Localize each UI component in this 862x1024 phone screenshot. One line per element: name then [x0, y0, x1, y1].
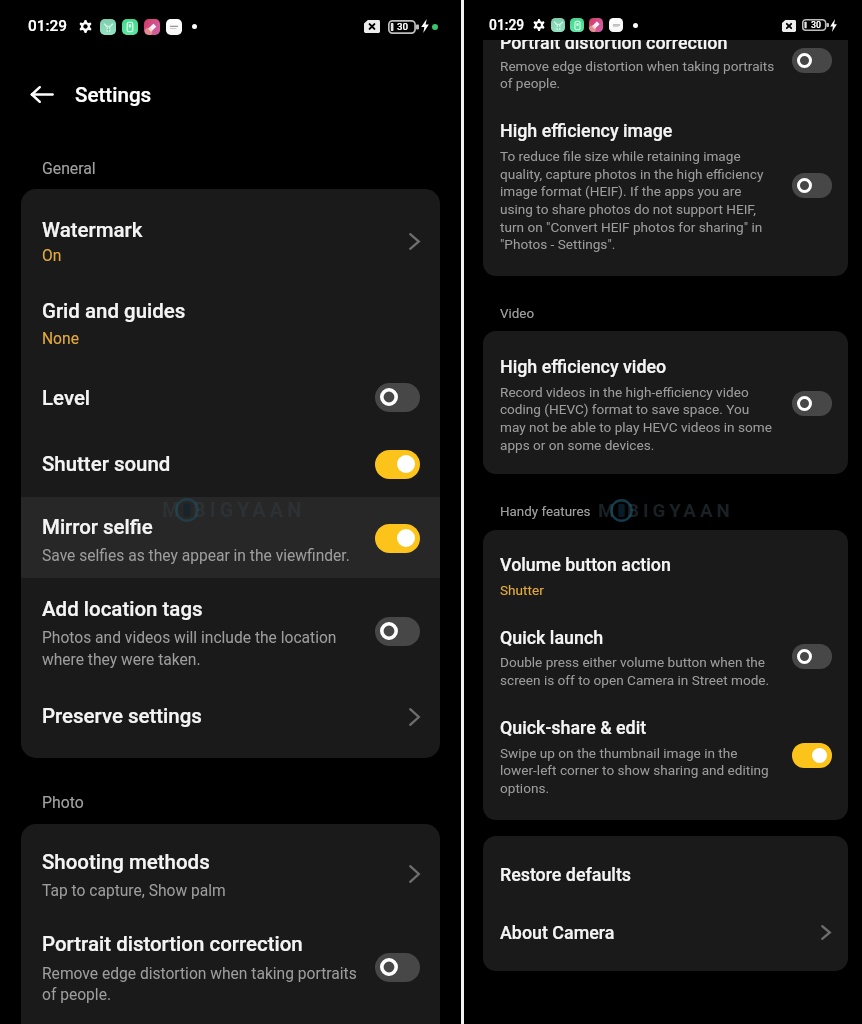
staticText: Volume button action — [500, 554, 671, 575]
staticText: screen is off to open Camera in Street m… — [500, 671, 770, 689]
staticText: High efficiency video — [500, 356, 667, 377]
staticText: BIGYAAN — [627, 500, 734, 522]
staticText: where they were taken. — [42, 648, 201, 669]
staticText: image format (HEIF). If the apps you are — [500, 182, 742, 200]
staticText: "Photos - Settings". — [500, 235, 616, 253]
button[interactable]: Switch on — [375, 450, 420, 479]
button[interactable]: Open — [401, 857, 428, 891]
button[interactable]: Switch on — [792, 743, 832, 768]
staticText: quality, capture photos in the high effi… — [500, 165, 764, 183]
staticText: apps or on some devices. — [500, 436, 655, 454]
staticText: Preserve settings — [42, 704, 202, 728]
staticText: None — [42, 330, 79, 348]
staticText: Shutter — [500, 581, 544, 599]
staticText: Shooting methods — [42, 850, 210, 874]
staticText: Shutter sound — [42, 452, 171, 476]
staticText: using to share photos do not support HEI… — [500, 200, 756, 218]
staticText: BIGYAAN — [193, 499, 306, 522]
button[interactable]: Switch off — [375, 953, 420, 982]
staticText: Portrait distortion correction — [500, 32, 728, 53]
staticText: coding (HEVC) format to save space. You — [500, 400, 750, 418]
button[interactable]: Switch off — [792, 391, 832, 416]
button[interactable]: Switch off — [792, 644, 832, 669]
staticText: Quick launch — [500, 627, 604, 648]
staticText: General — [42, 159, 96, 178]
staticText: Video — [500, 306, 535, 322]
staticText: turn on "Convert HEIF photos for sharing… — [500, 218, 763, 236]
staticText: On — [42, 247, 62, 265]
staticText: High efficiency image — [500, 120, 673, 141]
button[interactable]: Back — [20, 83, 64, 105]
staticText: Restore defaults — [500, 864, 632, 885]
staticText: Photo — [42, 793, 84, 812]
staticText: Add location tags — [42, 597, 203, 621]
staticText: of people. — [42, 983, 112, 1004]
staticText: Photos and videos will include the locat… — [42, 626, 337, 647]
button[interactable]: Open — [401, 700, 428, 734]
button[interactable]: Switch off — [792, 173, 832, 198]
staticText: 30 — [811, 20, 822, 30]
staticText: Watermark — [42, 218, 143, 242]
staticText: Level — [42, 386, 91, 410]
staticText: Tap to capture, Show palm — [42, 879, 226, 900]
button[interactable]: Open — [813, 917, 839, 948]
button[interactable]: Switch off — [375, 383, 420, 412]
staticText: 30 — [397, 21, 409, 32]
staticText: lower-left corner to show sharing and ed… — [500, 761, 769, 779]
staticText: Settings — [75, 83, 152, 107]
button[interactable]: Switch off — [792, 48, 832, 73]
staticText: may not be able to play HEVC videos in s… — [500, 418, 772, 436]
staticText: Double press either volume button when t… — [500, 653, 766, 671]
staticText: Remove edge distortion when taking portr… — [42, 962, 357, 983]
staticText: Remove edge distortion when taking portr… — [500, 57, 775, 75]
staticText: Swipe up on the thumbnail image in the — [500, 744, 738, 762]
staticText: M — [162, 499, 184, 522]
staticText: M — [598, 500, 619, 522]
staticText: Grid and guides — [42, 299, 186, 323]
button[interactable]: Switch on — [375, 524, 420, 553]
staticText: Handy features — [500, 504, 591, 520]
button[interactable]: Switch off — [375, 617, 420, 646]
staticText: About Camera — [500, 922, 615, 943]
staticText: Portrait distortion correction — [42, 932, 303, 956]
staticText: Quick-share & edit — [500, 717, 647, 738]
staticText: options. — [500, 779, 549, 797]
staticText: 01:29 — [28, 17, 68, 35]
staticText: 01:29 — [489, 17, 525, 33]
staticText: Record videos in the high-efficiency vid… — [500, 383, 749, 401]
staticText: Mirror selfie — [42, 515, 153, 539]
staticText: Save selfies as they appear in the viewf… — [42, 544, 350, 565]
staticText: To reduce file size while retaining imag… — [500, 147, 741, 165]
staticText: of people. — [500, 74, 561, 92]
button[interactable]: Open — [401, 225, 428, 258]
